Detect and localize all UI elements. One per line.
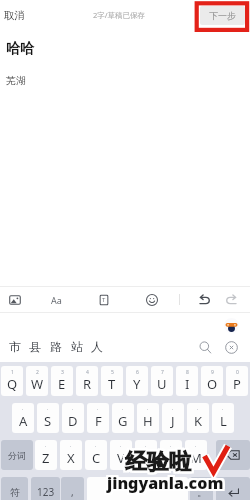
button[interactable]: 站 <box>66 335 87 357</box>
staticText: 分词 <box>8 450 26 461</box>
button[interactable]: 县 <box>24 335 45 357</box>
staticText: 经验啦 <box>127 448 193 476</box>
staticText: X <box>67 449 75 467</box>
staticText: T <box>108 375 116 393</box>
button[interactable]: Delete <box>216 440 250 470</box>
staticText: 7 <box>161 369 164 376</box>
staticText: jingyanla.com <box>107 472 224 494</box>
button[interactable]: 7 <box>151 366 173 396</box>
button[interactable]: 123 <box>31 477 60 500</box>
staticText: 经验啦 <box>125 450 191 478</box>
staticText: jingyanla.com <box>109 474 226 496</box>
button[interactable]: 2 <box>26 366 48 396</box>
staticText: 下一步 <box>209 10 236 21</box>
staticText: U <box>157 375 167 393</box>
button[interactable]: · <box>60 440 82 470</box>
staticText: 经验啦 <box>125 448 191 476</box>
button[interactable]: 符 <box>1 477 28 500</box>
button[interactable]: · <box>212 403 234 433</box>
button[interactable]: · <box>110 440 132 470</box>
staticText: · <box>45 443 47 450</box>
staticText: 路 <box>50 339 62 354</box>
button[interactable]: 1 <box>1 366 23 396</box>
button[interactable]: 9 <box>201 366 223 396</box>
button[interactable]: 6 <box>126 366 148 396</box>
button[interactable]: · <box>62 403 84 433</box>
button[interactable]: Search <box>194 336 216 358</box>
button[interactable]: 人 <box>86 335 107 357</box>
button[interactable]: 分词 <box>1 440 33 470</box>
staticText: · <box>145 443 147 450</box>
staticText: F <box>95 412 102 430</box>
button[interactable]: Insert image <box>4 286 26 313</box>
staticText: T <box>102 296 106 304</box>
staticText: · <box>147 406 149 413</box>
button[interactable]: · <box>112 403 134 433</box>
staticText: 1 <box>11 369 14 376</box>
button[interactable]: 取消 <box>4 9 25 22</box>
staticText: 0 <box>236 369 239 376</box>
button[interactable]: · <box>37 403 59 433</box>
staticText: E <box>58 375 66 393</box>
staticText: · <box>47 406 49 413</box>
button[interactable]: · <box>85 440 107 470</box>
button[interactable]: Enter <box>216 477 250 500</box>
button[interactable]: · <box>137 403 159 433</box>
button[interactable]: · <box>135 440 157 470</box>
button[interactable]: 3 <box>51 366 73 396</box>
staticText: D <box>68 412 78 430</box>
staticText: · <box>195 443 197 450</box>
staticText: · <box>172 406 174 413</box>
staticText: 经验啦 <box>123 448 189 476</box>
staticText: A <box>19 412 28 430</box>
button[interactable]: 5 <box>101 366 123 396</box>
button[interactable]: Undo <box>194 286 216 313</box>
staticText: R <box>83 375 92 393</box>
staticText: H <box>143 412 153 430</box>
staticText: 站 <box>71 339 83 354</box>
staticText: 4 <box>86 369 89 376</box>
button[interactable]: 下一步 <box>200 6 245 25</box>
button[interactable]: · <box>12 403 34 433</box>
staticText: O <box>207 375 218 393</box>
button[interactable]: · <box>162 403 184 433</box>
staticText: C <box>92 449 101 467</box>
button[interactable]: 路 <box>45 335 66 357</box>
button[interactable]: 0 <box>226 366 248 396</box>
staticText: jingyanla.com <box>105 472 222 494</box>
button[interactable]: 市 <box>4 335 25 357</box>
staticText: 8 <box>186 369 189 376</box>
button[interactable]: Emoji <box>141 286 163 313</box>
staticText: 经验啦 <box>123 450 189 478</box>
button[interactable]: · <box>187 403 209 433</box>
button[interactable]: , <box>61 477 84 500</box>
button[interactable]: Text box <box>93 286 115 313</box>
button[interactable]: 。 <box>190 477 213 500</box>
staticText: 经验啦 <box>127 446 193 474</box>
button[interactable]: · <box>185 440 207 470</box>
button[interactable]: Space <box>87 477 188 500</box>
staticText: 哈哈 <box>6 40 34 58</box>
staticText: 经验啦 <box>123 446 189 474</box>
button[interactable]: · <box>87 403 109 433</box>
button[interactable]: 8 <box>176 366 198 396</box>
staticText: V <box>117 449 125 467</box>
staticText: Aa <box>51 294 62 306</box>
staticText: 9 <box>211 369 214 376</box>
staticText: S <box>44 412 52 430</box>
staticText: 。 <box>197 486 207 499</box>
staticText: · <box>170 443 172 450</box>
staticText: M <box>190 449 202 467</box>
staticText: 3 <box>61 369 64 376</box>
staticText: 人 <box>91 339 103 354</box>
button[interactable]: 4 <box>76 366 98 396</box>
staticText: , <box>71 485 74 499</box>
button[interactable]: · <box>35 440 57 470</box>
staticText: Z <box>42 449 50 467</box>
button[interactable]: Hide keyboard <box>220 336 242 358</box>
button[interactable]: Redo <box>220 286 242 313</box>
staticText: 符 <box>10 486 20 499</box>
button[interactable]: · <box>160 440 182 470</box>
button[interactable]: Font style <box>45 286 67 313</box>
staticText: jingyanla.com <box>105 474 222 496</box>
